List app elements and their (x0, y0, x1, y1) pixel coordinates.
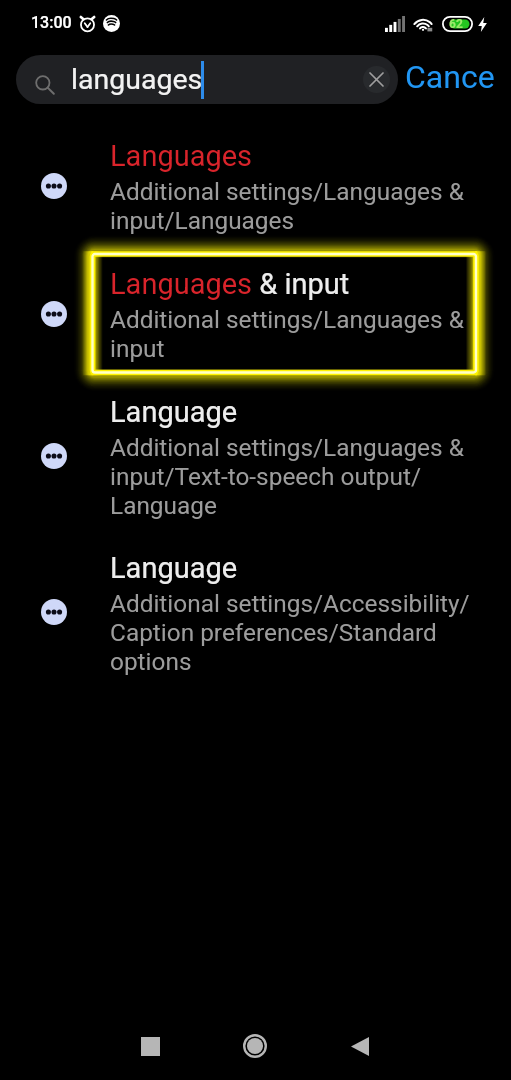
staticText: Caption preferences/Standard (110, 618, 437, 647)
button[interactable]: Cancel (405, 52, 494, 101)
staticText: options (110, 647, 192, 676)
staticText: input (110, 334, 165, 363)
staticText: 13:00 (31, 13, 72, 32)
staticText: Additional settings/Languages & (110, 305, 464, 334)
staticText: Language (110, 491, 217, 520)
button[interactable]: Language (110, 395, 480, 429)
staticText: Cancel (405, 58, 494, 96)
staticText: input/Languages (110, 206, 295, 235)
staticText: 62 (449, 17, 463, 31)
button[interactable]: languages (16, 55, 398, 104)
button[interactable]: Clear search (363, 66, 390, 93)
staticText: Language (110, 551, 238, 585)
button[interactable]: Language (110, 551, 480, 585)
button[interactable]: Recents (127, 1023, 173, 1069)
staticText: languages (71, 63, 203, 96)
staticText: input/Text-to-speech output/ (110, 462, 422, 491)
staticText: Additional settings/Languages & (110, 177, 464, 206)
staticText: Additional settings/Languages & (110, 433, 464, 462)
staticText: Additional settings/Accessibility/ (110, 589, 470, 618)
staticText: Languages (110, 139, 253, 173)
button[interactable]: Languages & input (110, 267, 480, 301)
staticText: Language (110, 395, 238, 429)
button[interactable]: Home (232, 1023, 278, 1069)
button[interactable]: Back (337, 1023, 383, 1069)
staticText: Languages & input (110, 267, 350, 301)
button[interactable]: Languages (110, 139, 480, 173)
